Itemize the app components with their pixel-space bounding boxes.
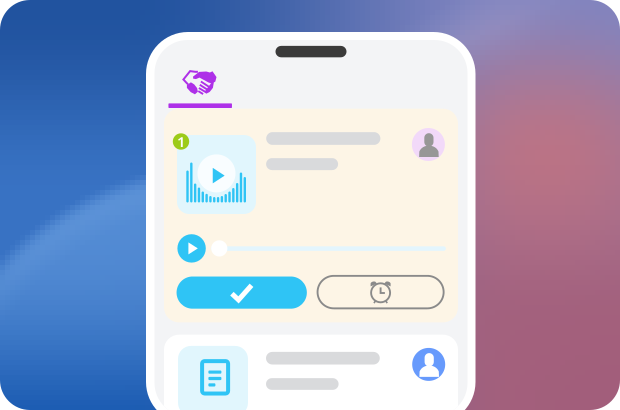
button[interactable]: Remind me later [318, 276, 444, 308]
button[interactable]: Deals [164, 66, 242, 116]
button[interactable]: Play [177, 234, 206, 263]
button[interactable]: 1 [164, 109, 458, 322]
button[interactable] [164, 335, 458, 410]
staticText: 1 [177, 132, 185, 151]
button[interactable]: Accept [177, 276, 307, 309]
